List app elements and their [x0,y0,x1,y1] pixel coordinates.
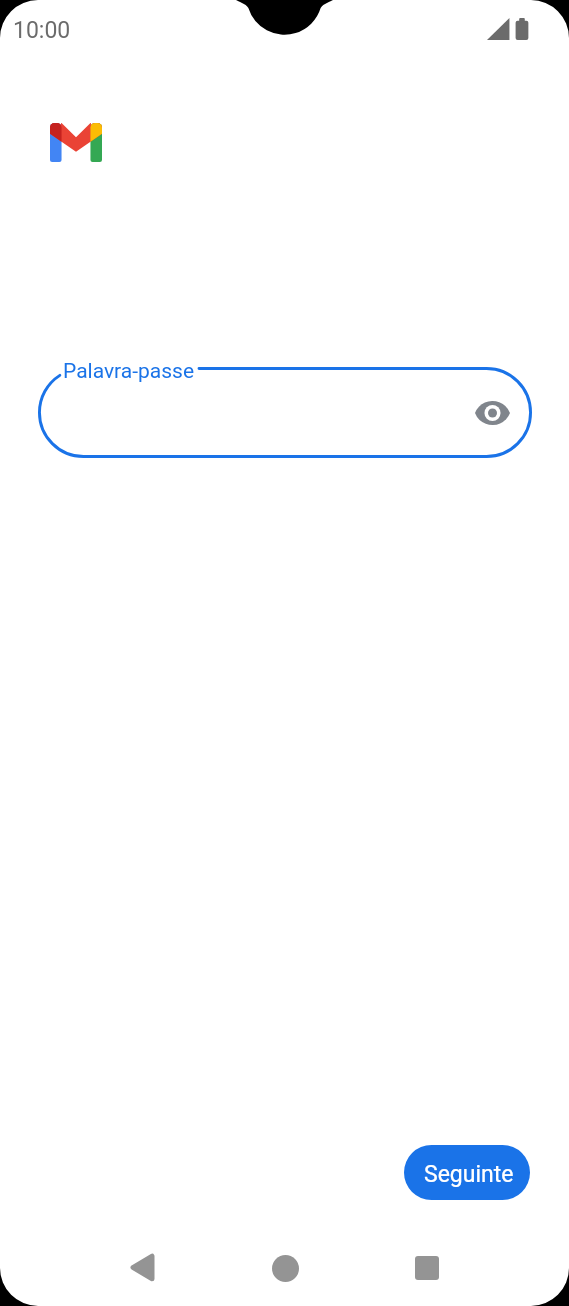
staticText: Palavra-passe [63,359,195,384]
button[interactable]: Seguinte [404,1145,530,1200]
button[interactable]: Back [116,1243,164,1291]
button[interactable]: Palavra-passe [38,367,532,458]
staticText: Seguinte [424,1161,514,1188]
button[interactable]: Home [261,1244,309,1292]
staticText: 10:00 [13,17,71,44]
button[interactable]: Mostrar palavra-passe [470,391,514,435]
button[interactable]: Recent apps [403,1244,451,1292]
